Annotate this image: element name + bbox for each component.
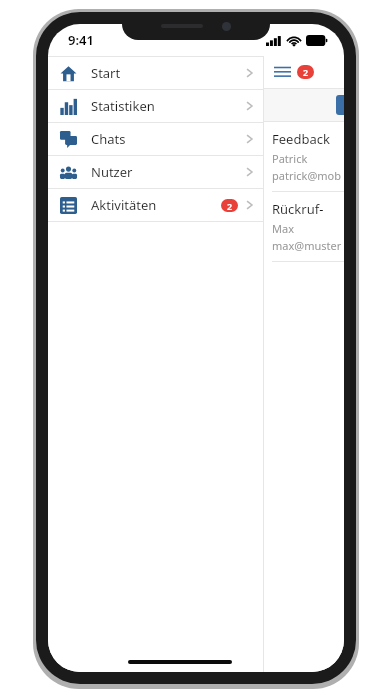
button[interactable]: Nutzer — [48, 155, 263, 188]
staticText: Statistiken — [91, 97, 155, 115]
staticText: patrick@mobil — [272, 168, 342, 183]
button[interactable]: Start — [48, 56, 263, 89]
staticText: Aktivitäten — [91, 196, 157, 214]
staticText: 2 — [227, 200, 233, 212]
staticText: 9:41 — [68, 31, 94, 49]
staticText: Chats — [91, 130, 126, 148]
staticText: Rückruf-Ser — [272, 200, 342, 218]
staticText: Feedback — [272, 130, 330, 148]
staticText: Max — [272, 221, 294, 236]
staticText: Nutzer — [91, 163, 133, 181]
staticText: max@musterm — [272, 238, 342, 253]
button[interactable]: Aktion — [336, 95, 344, 115]
button[interactable]: Rückruf-Ser — [264, 192, 344, 261]
button[interactable]: Feedback — [264, 122, 344, 191]
button[interactable]: Statistiken — [48, 89, 263, 122]
button[interactable]: Aktivitäten — [48, 188, 263, 221]
button[interactable]: Chats — [48, 122, 263, 155]
button[interactable]: Menü — [274, 65, 314, 79]
staticText: 2 — [303, 66, 309, 78]
staticText: Patrick — [272, 151, 308, 166]
staticText: Start — [91, 64, 121, 82]
